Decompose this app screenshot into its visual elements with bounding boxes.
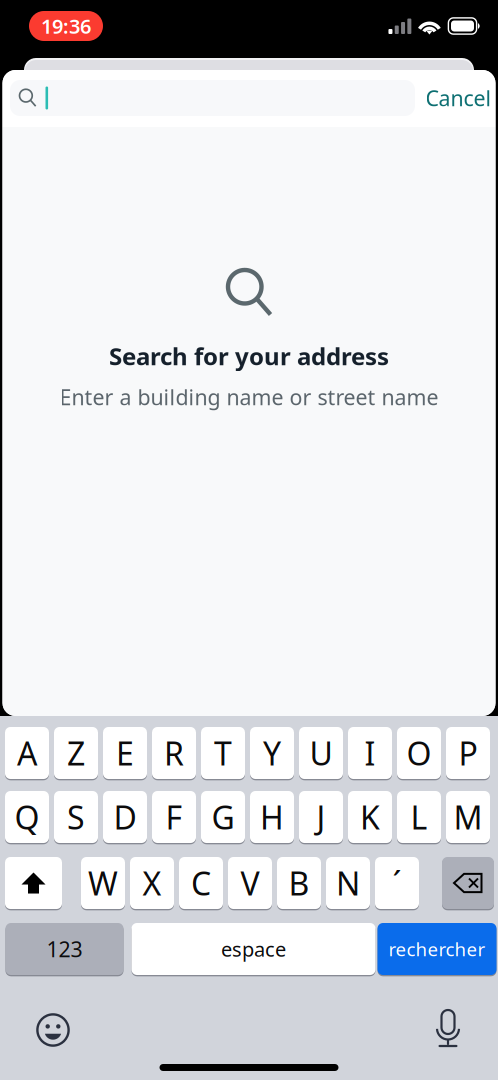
staticText: K bbox=[360, 796, 380, 838]
button[interactable]: Cancel bbox=[425, 80, 498, 116]
button[interactable]: T bbox=[201, 727, 245, 779]
button[interactable]: B bbox=[277, 857, 321, 909]
staticText: R bbox=[164, 732, 184, 774]
button[interactable]: G bbox=[201, 791, 245, 843]
staticText: I bbox=[364, 732, 375, 774]
button[interactable]: L bbox=[397, 791, 441, 843]
staticText: 123 bbox=[46, 935, 82, 963]
button[interactable]: Emoji bbox=[36, 1013, 70, 1047]
button[interactable]: E bbox=[103, 727, 147, 779]
staticText: U bbox=[309, 732, 332, 774]
staticText: Search for your address bbox=[109, 340, 389, 372]
button[interactable]: K bbox=[348, 791, 392, 843]
button[interactable]: 123 bbox=[5, 923, 123, 975]
button[interactable]: Dictation bbox=[432, 1010, 464, 1048]
staticText: Enter a building name or street name bbox=[59, 383, 438, 411]
staticText: Z bbox=[67, 732, 85, 774]
button[interactable]: J bbox=[299, 791, 343, 843]
staticText: F bbox=[165, 796, 182, 838]
staticText: P bbox=[458, 732, 477, 774]
button[interactable]: rechercher bbox=[377, 923, 496, 975]
staticText: D bbox=[113, 796, 136, 838]
button[interactable]: A bbox=[5, 727, 49, 779]
button[interactable]: C bbox=[179, 857, 223, 909]
staticText: M bbox=[453, 796, 482, 838]
staticText: rechercher bbox=[388, 937, 485, 961]
button[interactable]: D bbox=[103, 791, 147, 843]
button[interactable]: Z bbox=[54, 727, 98, 779]
staticText: O bbox=[406, 732, 431, 774]
staticText: 19:36 bbox=[41, 13, 91, 39]
button[interactable]: O bbox=[397, 727, 441, 779]
staticText: X bbox=[142, 862, 161, 904]
button[interactable]: X bbox=[130, 857, 174, 909]
staticText: Cancel bbox=[425, 84, 491, 112]
staticText: E bbox=[116, 732, 134, 774]
button[interactable]: H bbox=[250, 791, 294, 843]
button[interactable]: Q bbox=[5, 791, 49, 843]
staticText: Y bbox=[263, 732, 281, 774]
staticText: C bbox=[191, 862, 211, 904]
button[interactable]: ´ bbox=[375, 857, 419, 909]
button[interactable]: S bbox=[54, 791, 98, 843]
staticText: G bbox=[211, 796, 234, 838]
button[interactable]: U bbox=[299, 727, 343, 779]
button[interactable]: R bbox=[152, 727, 196, 779]
button[interactable]: M bbox=[446, 791, 490, 843]
button[interactable]: Y bbox=[250, 727, 294, 779]
staticText: ´ bbox=[392, 862, 401, 904]
staticText: A bbox=[17, 732, 37, 774]
staticText: espace bbox=[221, 936, 286, 962]
button[interactable]: Shift bbox=[5, 857, 62, 909]
staticText: N bbox=[336, 862, 360, 904]
staticText: J bbox=[316, 796, 325, 838]
button[interactable]: V bbox=[228, 857, 272, 909]
button[interactable]: W bbox=[81, 857, 125, 909]
button[interactable]: espace bbox=[131, 923, 375, 975]
staticText: L bbox=[410, 796, 427, 838]
staticText: W bbox=[88, 862, 118, 904]
staticText: H bbox=[260, 796, 284, 838]
button[interactable]: I bbox=[348, 727, 392, 779]
button[interactable]: P bbox=[446, 727, 490, 779]
button[interactable]: F bbox=[152, 791, 196, 843]
staticText: S bbox=[67, 796, 85, 838]
button[interactable]: N bbox=[326, 857, 370, 909]
staticText: Q bbox=[14, 796, 39, 838]
staticText: V bbox=[240, 862, 259, 904]
button[interactable]: Delete bbox=[442, 857, 494, 909]
staticText: B bbox=[288, 862, 309, 904]
staticText: T bbox=[214, 732, 232, 774]
